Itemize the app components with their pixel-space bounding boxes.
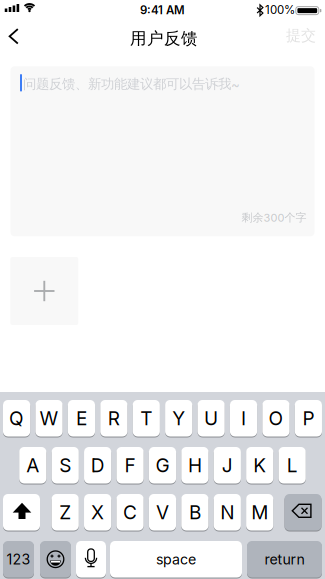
button[interactable]: M xyxy=(246,494,273,530)
button[interactable]: 提交 xyxy=(279,21,323,49)
staticText: U xyxy=(204,407,218,430)
button[interactable]: K xyxy=(246,447,273,483)
staticText: 用户反馈 xyxy=(130,28,198,49)
button[interactable]: R xyxy=(100,400,127,436)
button[interactable]: G xyxy=(149,447,176,483)
button[interactable]: E xyxy=(68,400,95,436)
button[interactable]: Back xyxy=(0,20,30,52)
staticText: Z xyxy=(59,501,71,524)
button[interactable]: O xyxy=(262,400,290,436)
staticText: R xyxy=(108,407,120,430)
staticText: F xyxy=(125,454,136,477)
staticText: T xyxy=(140,407,152,430)
button[interactable]: U xyxy=(197,400,225,436)
staticText: P xyxy=(302,407,314,430)
staticText: B xyxy=(189,501,201,524)
staticText: N xyxy=(220,501,234,524)
button[interactable]: Delete xyxy=(284,494,321,530)
staticText: 9:41 AM xyxy=(140,3,185,17)
button[interactable]: Emoji xyxy=(40,541,71,577)
button[interactable]: S xyxy=(52,447,79,483)
button[interactable]: H xyxy=(181,447,208,483)
staticText: O xyxy=(268,407,283,430)
staticText: C xyxy=(123,501,137,524)
staticText: A xyxy=(26,454,39,477)
staticText: M xyxy=(251,501,268,524)
staticText: Y xyxy=(172,407,185,430)
button[interactable]: B xyxy=(181,494,208,530)
staticText: L xyxy=(287,454,298,477)
button[interactable]: D xyxy=(84,447,111,483)
button[interactable]: W xyxy=(35,400,63,436)
staticText: E xyxy=(76,407,87,430)
staticText: I xyxy=(241,407,246,430)
staticText: Q xyxy=(9,407,24,430)
button[interactable]: V xyxy=(149,494,176,530)
staticText: S xyxy=(59,454,71,477)
button[interactable]: Dictate xyxy=(76,541,106,577)
staticText: V xyxy=(156,501,169,524)
button[interactable]: Shift xyxy=(3,494,40,530)
staticText: 剩余300个字 xyxy=(242,211,307,224)
staticText: 123 xyxy=(6,551,30,568)
button[interactable]: N xyxy=(214,494,241,530)
button[interactable]: I xyxy=(230,400,257,436)
button[interactable]: L xyxy=(279,447,306,483)
staticText: G xyxy=(155,454,169,477)
staticText: return xyxy=(264,551,304,568)
staticText: 提交 xyxy=(286,26,316,45)
button[interactable]: A xyxy=(19,447,46,483)
button[interactable]: Q xyxy=(3,400,30,436)
button[interactable]: T xyxy=(133,400,160,436)
staticText: W xyxy=(39,407,58,430)
staticText: H xyxy=(188,454,202,477)
button[interactable]: J xyxy=(214,447,241,483)
button[interactable]: Z xyxy=(52,494,79,530)
button[interactable]: P xyxy=(295,400,322,436)
staticText: D xyxy=(91,454,105,477)
button[interactable]: C xyxy=(116,494,144,530)
staticText: space xyxy=(156,551,196,568)
staticText: 问题反馈、新功能建议都可以告诉我~ xyxy=(23,76,240,92)
button[interactable]: return xyxy=(247,541,322,577)
staticText: K xyxy=(253,454,266,477)
button[interactable]: Y xyxy=(165,400,192,436)
button[interactable]: Add image xyxy=(10,257,78,325)
staticText: 100% xyxy=(265,3,295,17)
button[interactable]: 123 xyxy=(3,541,34,577)
button[interactable]: X xyxy=(84,494,111,530)
button[interactable]: F xyxy=(116,447,144,483)
staticText: X xyxy=(91,501,104,524)
staticText: J xyxy=(222,454,233,477)
button[interactable]: space xyxy=(110,541,242,577)
